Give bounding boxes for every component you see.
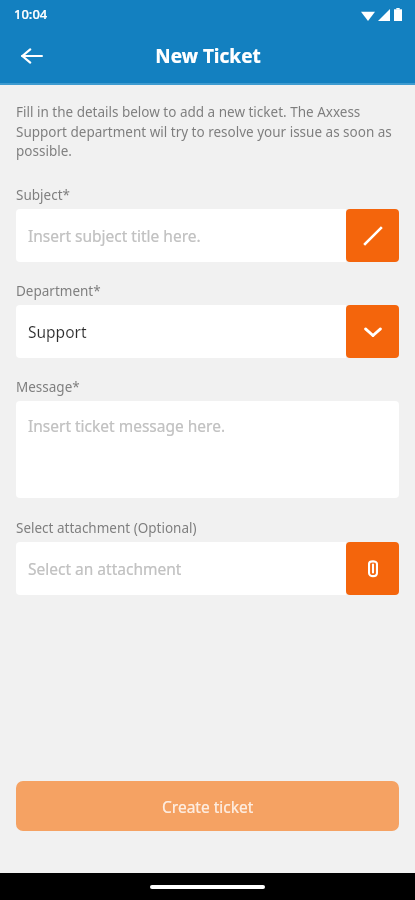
staticText: Select an attachment bbox=[28, 558, 182, 579]
button[interactable]: Insert subject title here. bbox=[16, 209, 346, 262]
button[interactable]: Edit subject bbox=[346, 209, 399, 262]
staticText: Department* bbox=[16, 282, 101, 300]
staticText: Insert ticket message here. bbox=[28, 415, 226, 436]
staticText: Create ticket bbox=[162, 796, 254, 817]
button[interactable]: Select department bbox=[346, 305, 399, 358]
staticText: Insert subject title here. bbox=[28, 225, 201, 246]
staticText: Subject* bbox=[16, 186, 70, 204]
staticText: 10:04 bbox=[14, 5, 48, 23]
button[interactable]: Insert ticket message here. bbox=[16, 401, 399, 498]
staticText: Message* bbox=[16, 378, 80, 396]
button[interactable]: Back bbox=[8, 32, 56, 80]
button[interactable]: Select an attachment bbox=[346, 542, 399, 595]
button[interactable]: Create ticket bbox=[16, 781, 399, 831]
button[interactable]: Support bbox=[16, 305, 346, 358]
staticText: Fill in the details below to add a new t… bbox=[16, 103, 399, 160]
button[interactable]: Select an attachment bbox=[16, 542, 346, 595]
staticText: Support bbox=[28, 321, 87, 342]
staticText: New Ticket bbox=[155, 43, 261, 69]
staticText: Select attachment (Optional) bbox=[16, 519, 197, 537]
